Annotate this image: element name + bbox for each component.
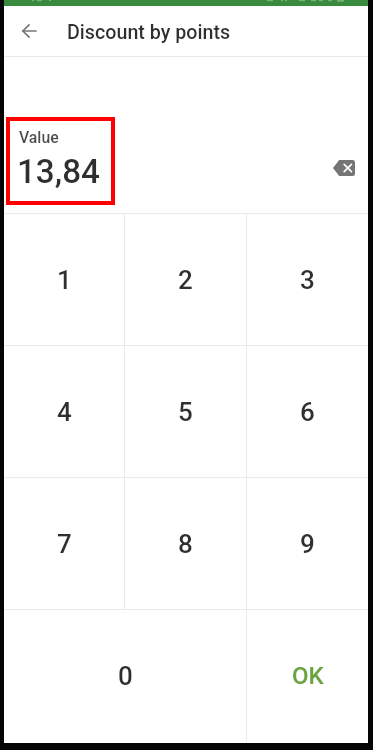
button[interactable]: 6: [247, 346, 368, 477]
staticText: 2: [178, 265, 193, 295]
staticText: 6: [300, 397, 315, 427]
staticText: 9: [300, 529, 315, 559]
button[interactable]: 9: [247, 478, 368, 609]
staticText: 7: [57, 529, 72, 559]
button[interactable]: 3: [247, 214, 368, 345]
button[interactable]: 0: [4, 610, 246, 741]
button[interactable]: 8: [125, 478, 246, 609]
staticText: 0: [118, 661, 133, 691]
button[interactable]: OK: [247, 610, 368, 741]
staticText: 4: [57, 397, 72, 427]
button[interactable]: Back: [12, 14, 46, 48]
staticText: Discount by points: [67, 21, 231, 44]
staticText: 5: [178, 397, 193, 427]
button[interactable]: 5: [125, 346, 246, 477]
staticText: 13,84: [17, 152, 100, 191]
staticText: OK: [292, 662, 324, 690]
button[interactable]: 2: [125, 214, 246, 345]
button[interactable]: 1: [4, 214, 124, 345]
staticText: 8: [178, 529, 193, 559]
button[interactable]: Backspace: [325, 149, 362, 186]
button[interactable]: 4: [4, 346, 124, 477]
button[interactable]: 7: [4, 478, 124, 609]
staticText: 1: [57, 265, 72, 295]
staticText: 3: [300, 265, 315, 295]
staticText: Value: [19, 128, 59, 147]
